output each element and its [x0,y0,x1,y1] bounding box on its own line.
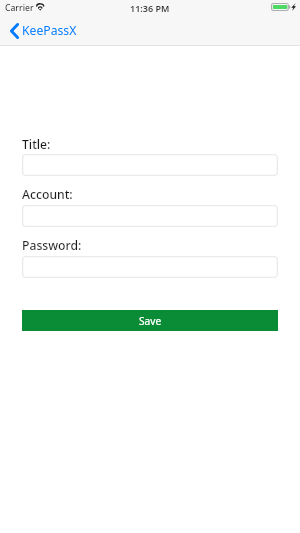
button[interactable]: KeePassX [2,20,84,45]
staticText: Account: [22,186,73,203]
staticText: 11:36 PM [130,2,170,14]
staticText: Save [139,314,162,328]
staticText: KeePassX [22,22,77,39]
button[interactable] [22,205,278,227]
other: Wi-Fi signal [36,3,45,11]
other: Battery charging [271,3,290,11]
staticText: Title: [22,136,51,153]
button[interactable] [22,256,278,278]
button[interactable] [22,154,278,176]
staticText: Password: [22,237,82,254]
button[interactable]: Save [22,310,278,331]
staticText: Carrier [5,2,34,14]
